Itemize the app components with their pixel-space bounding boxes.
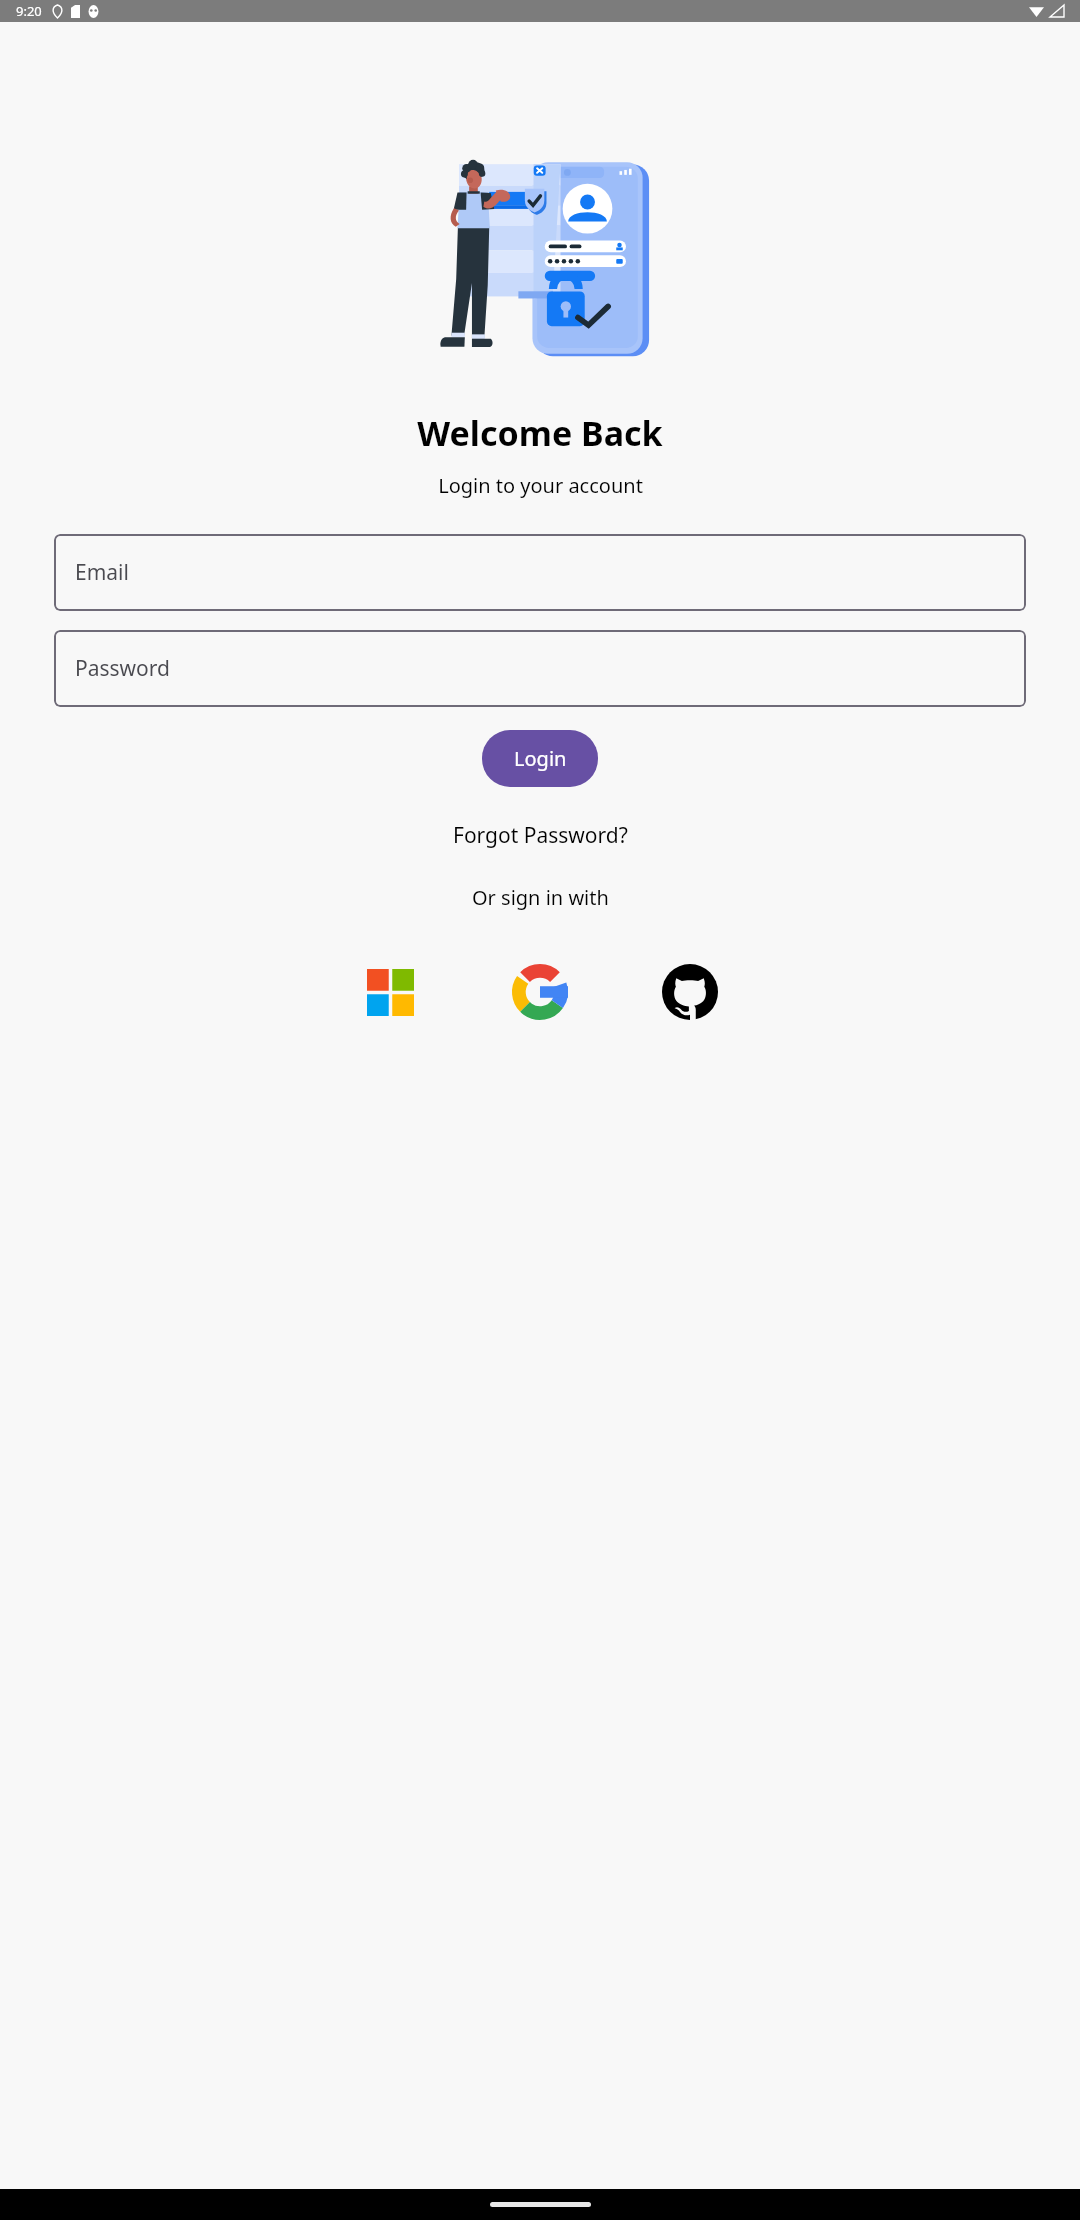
staticText: Login: [514, 745, 567, 772]
staticText: Or sign in with: [472, 884, 609, 911]
button[interactable]: Sign in with GitHub: [656, 958, 724, 1026]
staticText: Email: [75, 558, 129, 587]
staticText: Forgot Password?: [453, 821, 628, 850]
staticText: 9:20: [16, 2, 42, 20]
button[interactable]: Sign in with Google: [506, 958, 574, 1026]
staticText: Login to your account: [438, 472, 643, 499]
button[interactable]: Forgot Password?: [443, 815, 638, 856]
button[interactable]: Sign in with Microsoft: [356, 958, 424, 1026]
staticText: Welcome Back: [417, 410, 663, 456]
button[interactable]: Login: [482, 730, 598, 787]
button[interactable]: Email: [54, 534, 1026, 611]
staticText: Password: [75, 654, 170, 683]
button[interactable]: Password: [54, 630, 1026, 707]
